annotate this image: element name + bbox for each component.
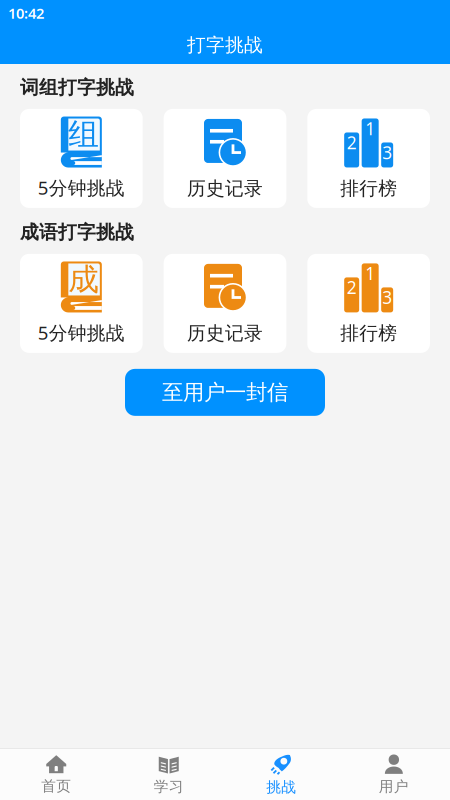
staticText: 挑战 (266, 778, 296, 796)
staticText: 5分钟挑战 (38, 175, 125, 200)
staticText: 10:42 (8, 3, 44, 23)
staticText: 成语打字挑战 (20, 221, 134, 244)
button[interactable]: 首页 (0, 748, 112, 800)
staticText: 学习 (154, 777, 184, 795)
staticText: 3 (382, 141, 392, 164)
staticText: 用户 (379, 777, 409, 795)
staticText: 2 (347, 276, 357, 299)
staticText: 至用户一封信 (162, 379, 288, 405)
button[interactable]: 历史记录 (164, 109, 286, 208)
staticText: 历史记录 (187, 177, 263, 200)
button[interactable]: 组 (20, 109, 143, 208)
button[interactable]: 2 (307, 254, 430, 353)
staticText: 排行榜 (340, 322, 397, 345)
staticText: 5分钟挑战 (38, 320, 125, 345)
button[interactable]: 至用户一封信 (125, 369, 325, 416)
button[interactable]: 用户 (337, 748, 450, 800)
button[interactable]: 历史记录 (164, 254, 286, 353)
staticText: 打字挑战 (187, 33, 263, 56)
staticText: 成 (68, 261, 99, 298)
staticText: 历史记录 (187, 322, 263, 345)
staticText: 词组打字挑战 (20, 76, 134, 99)
staticText: 排行榜 (340, 177, 397, 200)
button[interactable]: 学习 (112, 748, 225, 800)
button[interactable]: 成 (20, 254, 143, 353)
button[interactable]: 2 (307, 109, 430, 208)
staticText: 2 (347, 131, 357, 154)
staticText: 首页 (41, 777, 71, 795)
staticText: 1 (365, 117, 375, 140)
staticText: 1 (365, 262, 375, 285)
button[interactable]: 挑战 (225, 748, 337, 800)
staticText: 3 (382, 286, 392, 309)
staticText: 组 (68, 116, 99, 153)
